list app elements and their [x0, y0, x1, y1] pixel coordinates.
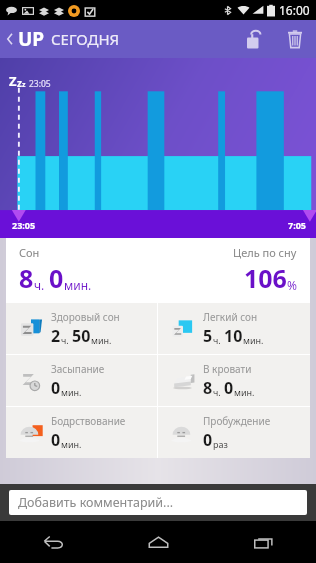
staticText: % [287, 277, 297, 293]
staticText: Бодрствование [51, 414, 126, 428]
button[interactable]: Легкий сон [158, 303, 310, 354]
staticText: 7:05 [288, 219, 306, 231]
staticText: ч. [213, 334, 221, 346]
staticText: мин. [64, 277, 92, 293]
staticText: 23:05 [29, 78, 51, 90]
staticText: 2 [51, 325, 61, 347]
staticText: z [22, 80, 26, 90]
button[interactable]: Recent apps [211, 521, 316, 563]
staticText: Z [9, 72, 17, 90]
button[interactable]: Добавить комментарий... [9, 490, 307, 515]
staticText: ч. [34, 277, 45, 293]
button[interactable]: В кровати [158, 355, 310, 406]
button[interactable]: Delete [274, 20, 316, 58]
staticText: 0 [203, 429, 213, 451]
staticText: 106 [244, 261, 287, 295]
staticText: мин. [234, 386, 255, 398]
button[interactable]: Здоровый сон [6, 303, 157, 354]
staticText: 0 [224, 377, 234, 399]
staticText: 50 [72, 325, 91, 347]
staticText: 8 [19, 261, 34, 295]
staticText: 0 [51, 377, 61, 399]
staticText: 23:05 [12, 219, 36, 231]
staticText: мин. [61, 438, 82, 450]
staticText: мин. [91, 334, 112, 346]
staticText: 0 [51, 429, 61, 451]
button[interactable]: Home [106, 521, 211, 563]
staticText: Засыпание [51, 362, 105, 376]
staticText: мин. [243, 334, 264, 346]
staticText: Цель по сну [233, 245, 297, 260]
staticText: Пробуждение [203, 414, 271, 428]
staticText: 0 [49, 261, 64, 295]
button[interactable]: Back [0, 521, 106, 563]
staticText: Легкий сон [203, 310, 258, 324]
button[interactable]: Сон [6, 238, 310, 303]
staticText: 8 [203, 377, 213, 399]
staticText: СЕГОДНЯ [51, 29, 120, 49]
button[interactable]: UP [0, 26, 128, 52]
staticText: 16:00 [279, 2, 310, 18]
staticText: Добавить комментарий... [18, 494, 174, 511]
button[interactable]: Бодрствование [6, 407, 157, 458]
button[interactable]: Засыпание [6, 355, 157, 406]
staticText: раз [213, 438, 228, 450]
staticText: Здоровый сон [51, 310, 120, 324]
staticText: 10 [224, 325, 243, 347]
button[interactable]: Пробуждение [158, 407, 310, 458]
staticText: Сон [19, 245, 40, 260]
staticText: мин. [61, 386, 82, 398]
staticText: 5 [203, 325, 213, 347]
staticText: z [17, 76, 22, 90]
staticText: ч. [213, 386, 221, 398]
button[interactable]: Unlock [234, 20, 274, 58]
staticText: ч. [61, 334, 69, 346]
staticText: В кровати [203, 362, 252, 376]
staticText: UP [18, 26, 45, 52]
